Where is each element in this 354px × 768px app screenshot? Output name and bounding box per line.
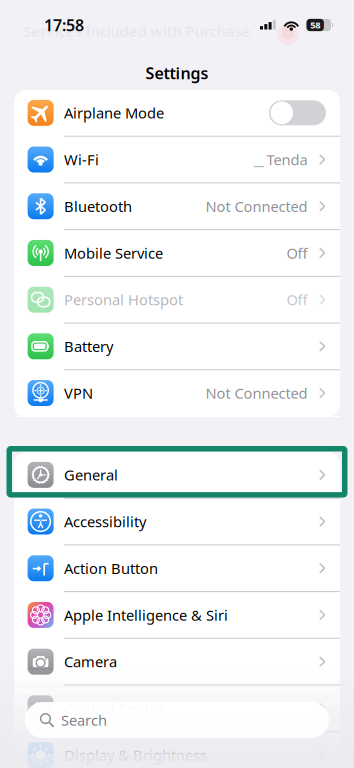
button[interactable]: Battery	[14, 323, 340, 370]
button[interactable]: Display & Brightness	[14, 732, 340, 768]
button[interactable]: Personal Hotspot	[14, 277, 340, 323]
button[interactable]: VPN	[14, 370, 340, 417]
staticText: Control Centre	[64, 699, 164, 718]
staticText: Airplane Mode	[64, 103, 164, 123]
staticText: ＿Tenda	[251, 150, 307, 169]
staticText: 17:58	[44, 14, 84, 36]
staticText: General	[64, 465, 118, 485]
staticText: Apple Intelligence & Siri	[64, 605, 228, 625]
staticText: Search	[61, 710, 107, 730]
staticText: Mobile Service	[64, 243, 163, 263]
staticText: Bluetooth	[64, 196, 132, 216]
staticText: Action Button	[64, 558, 158, 578]
button[interactable]: Control Centre	[14, 685, 340, 732]
staticText: Camera	[64, 652, 117, 671]
staticText: Off	[286, 290, 307, 309]
button[interactable]: General	[14, 452, 340, 499]
staticText: Wi-Fi	[64, 150, 99, 169]
staticText: 58	[310, 19, 320, 31]
staticText: Personal Hotspot	[64, 290, 183, 309]
button[interactable]: Bluetooth	[14, 183, 340, 230]
button[interactable]: Search	[25, 702, 329, 738]
button[interactable]: Camera	[14, 639, 340, 685]
staticText: Settings	[145, 62, 208, 84]
staticText: Display & Brightness	[64, 745, 207, 765]
staticText: Accessibility	[64, 512, 146, 531]
button[interactable]: Mobile Service	[14, 230, 340, 277]
button[interactable]: Accessibility	[14, 499, 340, 545]
staticText: Off	[286, 243, 307, 263]
button[interactable]: Wi-Fi	[14, 137, 340, 183]
staticText: Not Connected	[205, 383, 307, 403]
button[interactable]: Apple Intelligence & Siri	[14, 592, 340, 639]
staticText: Services Included with Purchase	[23, 21, 250, 41]
button[interactable]: Airplane Mode	[14, 90, 340, 137]
button[interactable]: Action Button	[14, 545, 340, 592]
staticText: Not Connected	[205, 196, 307, 216]
staticText: Battery	[64, 337, 113, 356]
staticText: VPN	[64, 383, 93, 403]
